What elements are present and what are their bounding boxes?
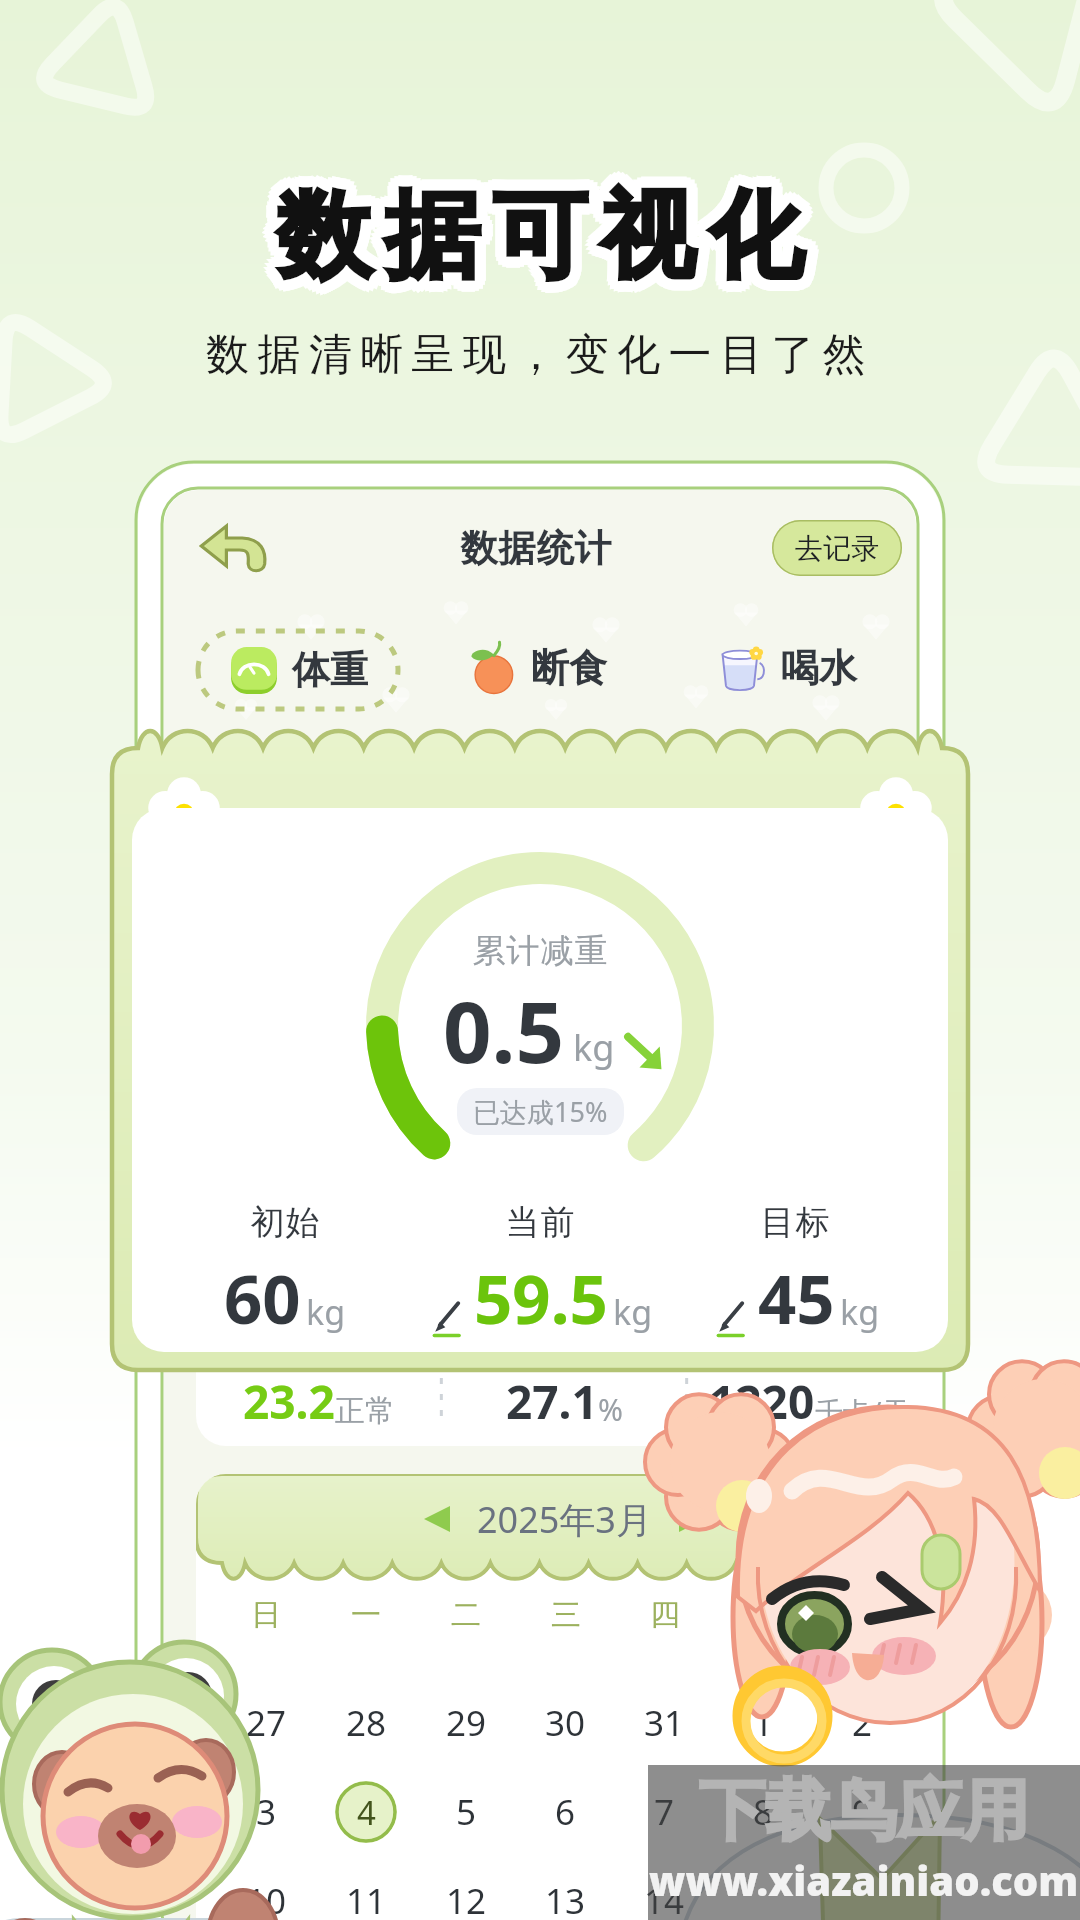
button[interactable]: 31 [615,1678,714,1767]
staticText: 5 [456,1788,477,1836]
button[interactable]: 上个月 [413,1495,461,1543]
staticText: 30 [545,1699,586,1747]
button[interactable]: 16 [813,1856,912,1920]
staticText: 数据可视化 [270,188,810,308]
staticText: 数据可视化 [260,181,800,301]
staticText: 6 [555,1788,576,1836]
staticText: 累计减重 [472,930,608,972]
staticText: 数据统计 [460,525,612,572]
staticText: 数据可视化 [281,177,821,297]
button[interactable]: 8 [714,1767,813,1856]
button[interactable]: 目标 [667,1201,922,1343]
staticText: 29 [446,1699,487,1747]
staticText: 数据可视化 [266,187,806,307]
button[interactable]: 喝水 [717,640,857,696]
staticText: 2 [852,1699,873,1747]
staticText: 下载鸟应用 [699,1769,1029,1852]
button[interactable]: 11 [316,1856,416,1920]
staticText: 数据可视化 [260,173,800,293]
button[interactable]: 当前 [412,1201,667,1343]
button[interactable]: 14 [615,1856,714,1920]
staticText: 喝水 [781,644,857,692]
staticText: 11 [346,1877,387,1920]
button[interactable]: 初始 [158,1201,412,1343]
button[interactable]: 15 [714,1856,813,1920]
staticText: 数据可视化 [280,181,820,301]
staticText: 7 [654,1788,675,1836]
staticText: 日 [251,1596,281,1634]
staticText: 二 [451,1596,481,1634]
staticText: 31 [644,1699,685,1747]
button[interactable]: 下个月 [668,1495,716,1543]
button[interactable]: 返回 [190,505,276,591]
staticText: 数据可视化 [270,166,810,286]
staticText: 23.2 [243,1370,335,1433]
staticText: 数据可视化 [278,185,818,305]
staticText: 14 [644,1877,685,1920]
staticText: 数据可视化 [274,167,814,287]
staticText: 10 [246,1877,287,1920]
staticText: 1220 [709,1370,815,1433]
button[interactable]: 6 [516,1767,615,1856]
staticText: 28 [346,1699,387,1747]
staticText: kg [306,1289,346,1335]
staticText: 千卡/天 [815,1392,910,1430]
staticText: 三 [551,1596,581,1634]
staticText: 8 [753,1788,774,1836]
staticText: 45 [758,1252,835,1343]
button[interactable]: 1 [714,1678,813,1767]
staticText: 60 [224,1252,301,1343]
button[interactable]: 2 [813,1678,912,1767]
button[interactable]: 13 [516,1856,615,1920]
button[interactable]: 4 [316,1767,416,1856]
staticText: 四 [650,1596,680,1634]
button[interactable]: 7 [615,1767,714,1856]
staticText: 15 [743,1877,784,1920]
staticText: 27.1 [506,1370,598,1433]
staticText: 体重 [292,646,368,694]
button[interactable]: 23.2 [196,1230,932,1446]
staticText: 数据可视化 [280,173,820,293]
staticText: 数据可视化 [274,187,814,307]
staticText: 13 [545,1877,586,1920]
staticText: 3 [256,1788,277,1836]
button[interactable]: 9 [813,1767,912,1856]
staticText: 4 [357,1790,376,1835]
staticText: 数据可视化 [266,167,806,287]
staticText: 数据可视化 [259,177,799,297]
button[interactable]: 10 [216,1856,316,1920]
staticText: 一 [351,1596,381,1634]
button[interactable]: 3 [216,1767,316,1856]
staticText: 1 [753,1699,774,1747]
button[interactable]: 12 [416,1856,516,1920]
staticText: 正常 [335,1392,395,1430]
staticText: 数据可视化 [262,169,802,289]
staticText: 已达成15% [473,1093,608,1130]
staticText: 去记录 [795,531,879,566]
staticText: 0.5 [443,972,565,1088]
staticText: 12 [446,1877,487,1920]
button[interactable]: 体重 [198,631,398,709]
button[interactable]: 29 [416,1678,516,1767]
staticText: 数据可视化 [270,177,810,297]
staticText: 数据清晰呈现，变化一目了然 [206,328,875,382]
button[interactable]: 5 [416,1767,516,1856]
staticText: kg [613,1289,653,1335]
staticText: 59.5 [474,1252,608,1343]
staticText: % [598,1389,623,1430]
staticText: www.xiazainiao.com [649,1853,1079,1907]
button[interactable]: 去记录 [772,520,902,576]
staticText: 27 [246,1699,287,1747]
staticText: 2025年3月 [477,1495,652,1544]
staticText: 六 [848,1596,878,1634]
staticText: 断食 [531,644,607,692]
button[interactable]: 30 [516,1678,615,1767]
button[interactable]: 断食 [467,640,607,696]
staticText: 16 [842,1877,883,1920]
button[interactable]: 28 [316,1678,416,1767]
staticText: 初始 [250,1201,320,1244]
staticText: 9 [852,1788,873,1836]
button[interactable]: 27 [216,1678,316,1767]
staticText: 目标 [760,1201,830,1244]
staticText: 五 [749,1596,779,1634]
